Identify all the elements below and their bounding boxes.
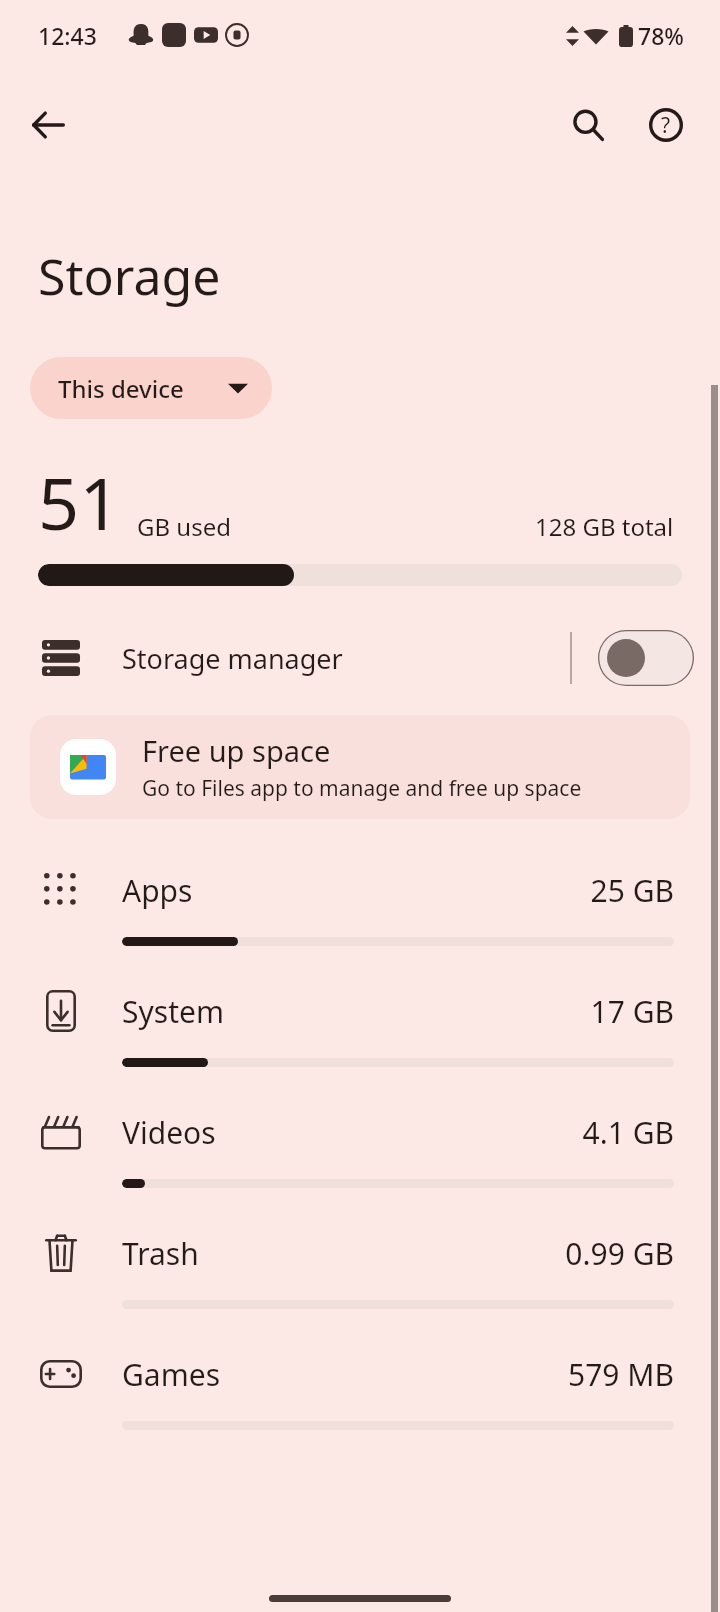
button[interactable]: Storage manager [0,612,720,704]
staticText: GB used [137,510,231,543]
button[interactable]: Back [16,93,80,157]
staticText: Go to Files app to manage and free up sp… [142,774,582,803]
staticText: 51 [38,453,121,551]
staticText: 17 GB [590,991,674,1032]
staticText: Storage [38,242,221,310]
staticText: System [122,991,590,1032]
staticText: 128 GB total [535,510,674,543]
staticText: 12:43 [38,20,97,51]
button[interactable]: Storage manager toggle [572,612,720,704]
button[interactable]: Free up space [30,715,690,819]
staticText: 78% [638,20,684,51]
staticText: Games [122,1354,568,1395]
staticText: Trash [122,1233,565,1274]
button[interactable]: This device [30,357,272,419]
staticText: 25 GB [590,870,674,911]
staticText: 0.99 GB [565,1233,674,1274]
staticText: Apps [122,870,590,911]
button[interactable]: Apps [0,843,720,964]
staticText: 579 MB [568,1354,674,1395]
button[interactable]: Search [556,93,620,157]
button[interactable]: Help [634,93,698,157]
button[interactable]: Videos [0,1085,720,1206]
staticText: ? [661,111,671,140]
staticText: Videos [122,1112,582,1153]
staticText: This device [58,372,184,405]
button[interactable]: Trash [0,1206,720,1327]
staticText: Storage manager [122,640,570,677]
button[interactable]: Games [0,1327,720,1448]
staticText: Free up space [142,731,331,770]
button[interactable]: System [0,964,720,1085]
staticText: 4.1 GB [582,1112,674,1153]
